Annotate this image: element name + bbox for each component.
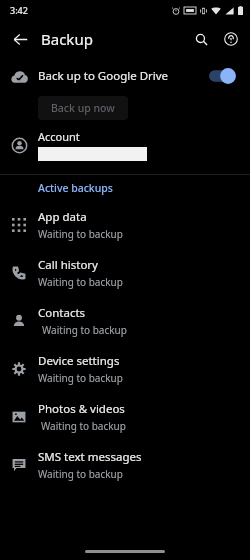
staticText: Active backups [38, 181, 113, 195]
button[interactable]: Back [4, 23, 36, 55]
staticText: Call history [38, 257, 98, 273]
button[interactable]: Photos & videos [0, 393, 250, 441]
button[interactable]: Back up to Google Drive toggle [209, 65, 239, 87]
button[interactable]: Back up now [38, 96, 128, 120]
staticText: Waiting to backup [38, 275, 123, 289]
staticText: Account [38, 129, 80, 144]
staticText: App data [38, 209, 87, 225]
button[interactable]: Account [0, 122, 250, 168]
staticText: Device settings [38, 353, 120, 369]
staticText: Back up now [51, 101, 115, 115]
staticText: Back up to Google Drive [38, 68, 209, 84]
button[interactable]: Contacts [0, 297, 250, 345]
staticText: Contacts [38, 305, 86, 321]
staticText: Waiting to backup [38, 371, 123, 385]
staticText: Waiting to backup [42, 323, 127, 337]
staticText: 3:42 [10, 4, 28, 16]
button[interactable]: Back up to Google Drive [0, 58, 250, 94]
button[interactable]: Search [186, 24, 216, 54]
staticText: Waiting to backup [41, 419, 126, 433]
staticText: Backup [41, 29, 93, 49]
button[interactable]: Device settings [0, 345, 250, 393]
button[interactable]: Call history [0, 249, 250, 297]
staticText: Waiting to backup [38, 227, 123, 241]
staticText: Waiting to backup [38, 467, 123, 481]
staticText: SMS text messages [38, 449, 142, 465]
button[interactable]: SMS text messages [0, 441, 250, 489]
button[interactable]: App data [0, 201, 250, 249]
staticText: Photos & videos [38, 401, 125, 417]
button[interactable]: Help [216, 24, 246, 54]
